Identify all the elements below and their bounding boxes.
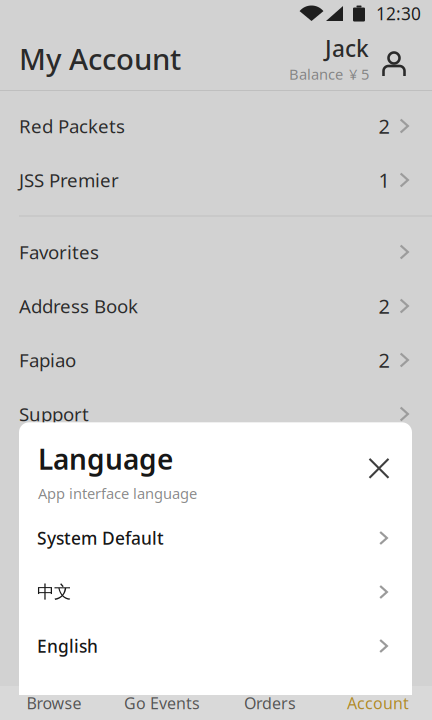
staticText: English [37, 634, 98, 657]
button[interactable]: Support [0, 387, 432, 441]
button[interactable]: Jack [289, 33, 407, 84]
button[interactable]: Orders [216, 686, 324, 720]
staticText: Orders [244, 692, 296, 714]
staticText: 2 [378, 293, 389, 319]
button[interactable]: Fapiao [0, 333, 432, 387]
button[interactable]: Address Book [0, 279, 432, 333]
staticText: System Default [37, 526, 164, 549]
button[interactable]: 中文 [19, 565, 412, 619]
staticText: 2 [378, 113, 389, 139]
staticText: Language [38, 440, 173, 477]
button[interactable]: Browse [0, 686, 108, 720]
button[interactable]: System Default [19, 511, 412, 565]
staticText: 2 [378, 347, 389, 373]
button[interactable]: English [19, 619, 412, 673]
staticText: My Account [19, 39, 181, 78]
staticText: Support [19, 402, 89, 426]
button[interactable]: JSS Premier [0, 153, 432, 207]
staticText: Red Packets [19, 114, 125, 138]
staticText: Favorites [19, 240, 99, 264]
staticText: Balance ¥ 5 [289, 64, 369, 84]
staticText: 12:30 [376, 2, 421, 25]
staticText: Address Book [19, 294, 138, 318]
staticText: 中文 [37, 581, 71, 603]
staticText: JSS Premier [19, 168, 119, 192]
button[interactable]: Account [324, 686, 432, 720]
staticText: Account [347, 692, 409, 714]
staticText: Go Events [124, 692, 200, 714]
button[interactable]: Go Events [108, 686, 216, 720]
button[interactable]: Favorites [0, 225, 432, 279]
staticText: App interface language [38, 483, 197, 503]
staticText: Jack [325, 33, 369, 63]
staticText: Browse [26, 692, 81, 714]
staticText: 1 [378, 167, 389, 193]
button[interactable]: Red Packets [0, 99, 432, 153]
button[interactable]: Close [360, 449, 398, 487]
staticText: Fapiao [19, 348, 76, 372]
